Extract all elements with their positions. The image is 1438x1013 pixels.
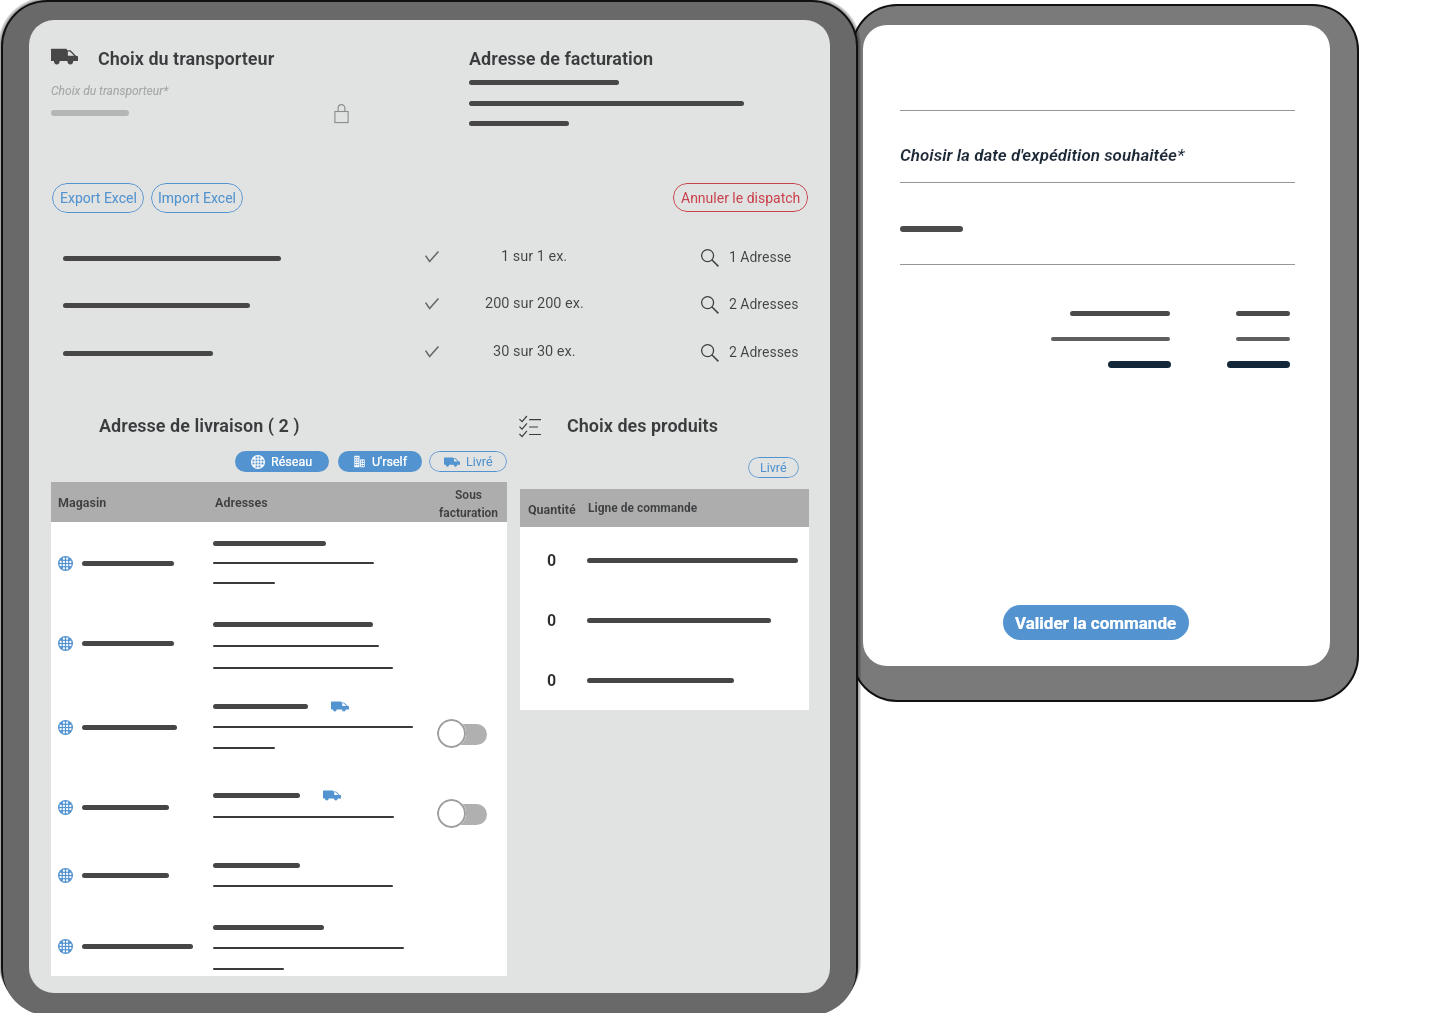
staticText: Réseau — [271, 454, 313, 469]
button[interactable] — [51, 835, 507, 915]
staticText: Quantité — [528, 502, 576, 517]
staticText: 1 Adresse — [729, 249, 792, 265]
staticText: Choisir la date d'expédition souhaitée* — [900, 145, 1185, 165]
staticText: Import Excel — [158, 190, 236, 206]
staticText: Adresses — [215, 495, 268, 510]
button[interactable]: Livré — [429, 451, 507, 472]
staticText: Livré — [760, 460, 787, 475]
staticText: Choix des produits — [567, 415, 718, 436]
staticText: Choix du transporteur — [98, 48, 275, 69]
staticText: 0 — [547, 611, 557, 630]
staticText: Valider la commande — [1015, 613, 1177, 633]
staticText: 0 — [547, 671, 557, 690]
button[interactable]: Sous facturation — [51, 767, 507, 847]
button[interactable] — [51, 603, 507, 683]
staticText: Ligne de commande — [588, 501, 698, 515]
button[interactable]: Sous facturation — [51, 687, 507, 767]
staticText: 1 sur 1 ex. — [501, 248, 568, 265]
staticText: 0 — [547, 551, 557, 570]
button[interactable]: U'rself — [338, 451, 422, 472]
staticText: U'rself — [372, 454, 407, 469]
staticText: Annuler le dispatch — [681, 190, 801, 206]
staticText: Export Excel — [60, 190, 137, 206]
staticText: Sous facturation — [436, 488, 501, 520]
staticText: 30 sur 30 ex. — [493, 343, 576, 360]
button[interactable] — [51, 523, 507, 603]
staticText: Adresse de facturation — [469, 48, 654, 69]
button[interactable]: Sous facturation — [436, 718, 487, 749]
button[interactable]: Sous facturation — [436, 798, 487, 829]
button[interactable] — [51, 906, 507, 986]
staticText: Adresse de livraison ( 2 ) — [99, 415, 300, 436]
button[interactable]: Livré — [748, 457, 799, 478]
button[interactable]: Réseau — [235, 451, 329, 472]
staticText: Livré — [466, 454, 493, 469]
staticText: 2 Adresses — [729, 344, 799, 360]
staticText: 200 sur 200 ex. — [485, 295, 584, 312]
button[interactable]: Export Excel — [52, 183, 144, 213]
button[interactable]: Annuler le dispatch — [673, 183, 808, 212]
staticText: Choix du transporteur* — [51, 84, 169, 98]
button[interactable]: Import Excel — [151, 183, 243, 213]
button[interactable]: Valider la commande — [1003, 605, 1189, 640]
staticText: Magasin — [58, 495, 107, 510]
staticText: 2 Adresses — [729, 296, 799, 312]
